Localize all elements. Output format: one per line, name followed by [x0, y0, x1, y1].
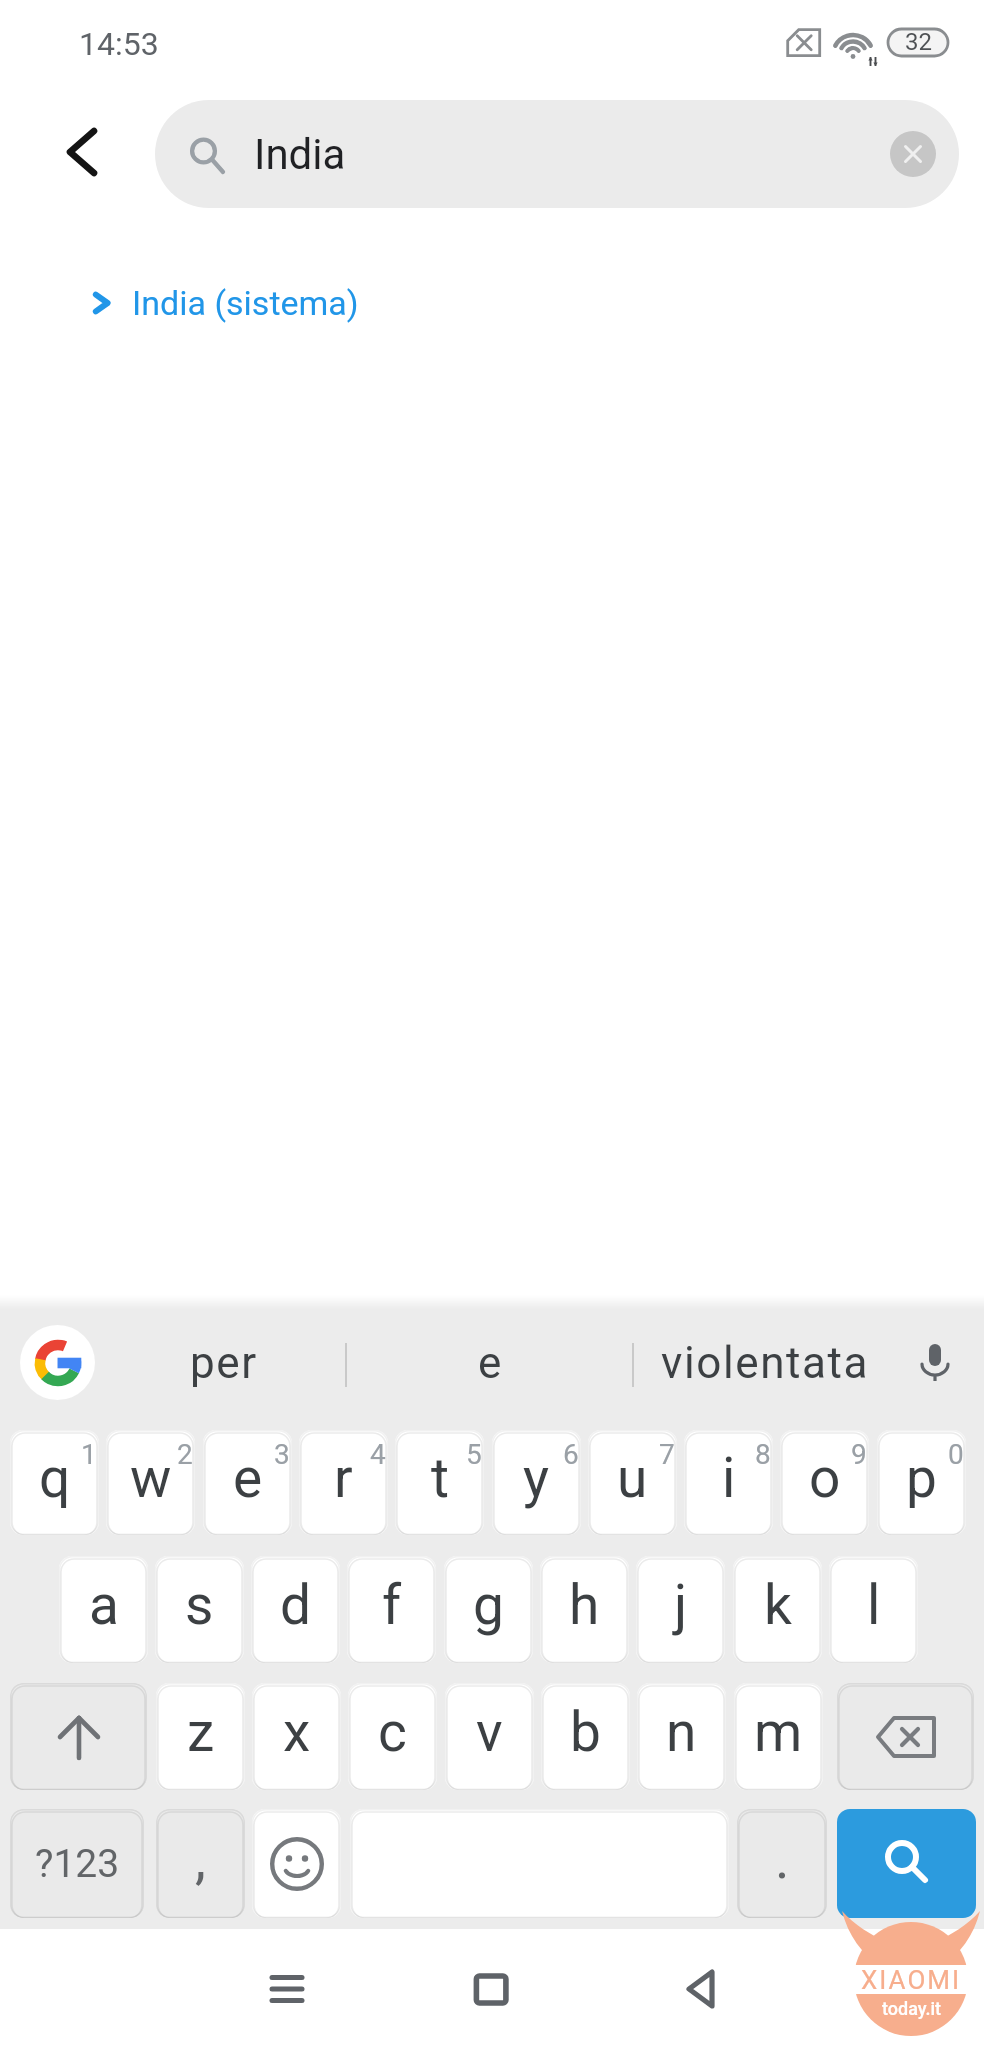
button[interactable]: w: [106, 1430, 195, 1535]
staticText: 32: [905, 28, 932, 55]
button[interactable]: c: [348, 1683, 437, 1790]
staticText: z: [187, 1700, 215, 1764]
staticText: today.it: [882, 1998, 941, 2019]
staticText: 5: [466, 1438, 482, 1471]
button[interactable]: Google search: [20, 1325, 95, 1400]
button[interactable]: j: [636, 1556, 725, 1663]
staticText: r: [334, 1446, 353, 1510]
button[interactable]: ,: [156, 1809, 245, 1918]
staticText: ?123: [35, 1841, 120, 1887]
staticText: c: [378, 1700, 407, 1764]
button[interactable]: p: [877, 1430, 966, 1535]
staticText: a: [89, 1573, 119, 1637]
button[interactable]: e: [347, 1309, 633, 1421]
staticText: 9: [851, 1438, 867, 1471]
staticText: 7: [659, 1438, 675, 1471]
staticText: 14:53: [79, 25, 159, 63]
button[interactable]: y: [492, 1430, 581, 1535]
button[interactable]: [350, 1809, 729, 1918]
button[interactable]: Recent apps: [235, 1937, 339, 2041]
button[interactable]: Back: [37, 108, 125, 196]
staticText: India: [254, 130, 346, 179]
button[interactable]: u: [588, 1430, 677, 1535]
staticText: 4: [370, 1438, 386, 1471]
staticText: j: [674, 1573, 688, 1637]
button[interactable]: Clear search: [890, 131, 936, 177]
button[interactable]: Emoji: [252, 1809, 341, 1918]
button[interactable]: Back: [650, 1937, 754, 2041]
button[interactable]: ?123: [10, 1809, 144, 1918]
staticText: XIAOMI: [861, 1965, 962, 1995]
button[interactable]: g: [444, 1556, 533, 1663]
button[interactable]: s: [155, 1556, 244, 1663]
button[interactable]: Search: [837, 1809, 976, 1918]
staticText: p: [906, 1446, 937, 1510]
button[interactable]: .: [737, 1809, 827, 1918]
staticText: l: [867, 1573, 881, 1637]
button[interactable]: n: [637, 1683, 726, 1790]
staticText: b: [570, 1700, 601, 1764]
staticText: violentata: [661, 1337, 870, 1389]
staticText: d: [280, 1573, 312, 1637]
button[interactable]: Voice input: [905, 1332, 965, 1392]
button[interactable]: q: [10, 1430, 99, 1535]
staticText: e: [478, 1337, 502, 1389]
button[interactable]: a: [59, 1556, 148, 1663]
staticText: India (sistema): [132, 283, 359, 323]
button[interactable]: l: [829, 1556, 918, 1663]
staticText: 1: [81, 1438, 97, 1471]
button[interactable]: India (sistema): [0, 260, 984, 346]
staticText: h: [569, 1573, 600, 1637]
button[interactable]: t: [395, 1430, 484, 1535]
button[interactable]: violentata: [634, 1309, 896, 1421]
button[interactable]: r: [299, 1430, 388, 1535]
button[interactable]: z: [156, 1683, 245, 1790]
staticText: y: [523, 1446, 550, 1510]
button[interactable]: o: [780, 1430, 869, 1535]
button[interactable]: v: [445, 1683, 534, 1790]
staticText: x: [283, 1700, 311, 1764]
button[interactable]: Shift: [10, 1683, 147, 1790]
staticText: v: [476, 1700, 503, 1764]
button[interactable]: e: [203, 1430, 292, 1535]
button[interactable]: b: [541, 1683, 630, 1790]
staticText: 3: [274, 1438, 290, 1471]
staticText: 0: [948, 1438, 964, 1471]
button[interactable]: d: [251, 1556, 340, 1663]
staticText: 2: [177, 1438, 193, 1471]
button[interactable]: Backspace: [837, 1683, 974, 1790]
button[interactable]: h: [540, 1556, 629, 1663]
staticText: f: [382, 1573, 402, 1637]
staticText: 8: [755, 1438, 771, 1471]
staticText: s: [185, 1573, 214, 1637]
staticText: k: [764, 1573, 792, 1637]
button[interactable]: f: [347, 1556, 436, 1663]
staticText: i: [722, 1446, 736, 1510]
staticText: q: [39, 1446, 71, 1510]
staticText: e: [233, 1446, 263, 1510]
staticText: o: [809, 1446, 841, 1510]
button[interactable]: x: [252, 1683, 341, 1790]
staticText: u: [617, 1446, 648, 1510]
staticText: ,: [195, 1827, 206, 1891]
staticText: g: [473, 1573, 504, 1637]
staticText: t: [431, 1446, 449, 1510]
button[interactable]: m: [734, 1683, 823, 1790]
button[interactable]: per: [110, 1309, 346, 1421]
staticText: .: [775, 1827, 790, 1891]
staticText: 6: [563, 1438, 579, 1471]
staticText: n: [666, 1700, 697, 1764]
button[interactable]: k: [733, 1556, 822, 1663]
staticText: w: [130, 1446, 172, 1510]
staticText: m: [754, 1700, 803, 1764]
staticText: per: [190, 1337, 258, 1389]
button[interactable]: India: [155, 100, 959, 208]
button[interactable]: Home: [439, 1937, 543, 2041]
button[interactable]: i: [684, 1430, 773, 1535]
